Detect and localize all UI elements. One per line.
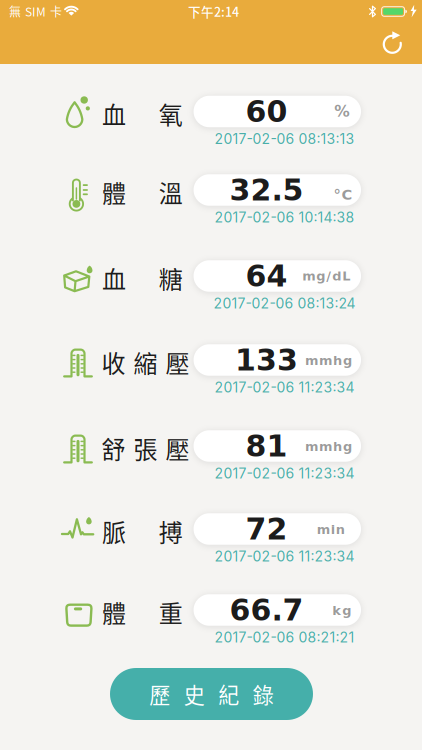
staticText: 血 (102, 96, 126, 131)
staticText: 72 (245, 511, 287, 546)
staticText: min (317, 522, 345, 537)
staticText: SIM (25, 3, 46, 20)
staticText: 2017-02-06 11:23:34 (214, 465, 354, 482)
staticText: 壓 (165, 431, 189, 465)
staticText: 133 (235, 342, 298, 377)
staticText: 體 (102, 595, 126, 629)
staticText: % (334, 102, 349, 120)
staticText: 2017-02-06 08:13:24 (213, 295, 355, 312)
staticText: 81 (245, 428, 287, 463)
staticText: 氧 (159, 96, 183, 131)
button[interactable]: Refresh (372, 24, 412, 64)
staticText: mmhg (305, 439, 352, 454)
staticText: 收 (101, 345, 125, 379)
staticText: 壓 (165, 345, 189, 379)
staticText: 體 (102, 175, 126, 209)
staticText: 搏 (159, 514, 183, 548)
staticText: 32.5 (229, 172, 303, 207)
staticText: 下午2:14 (188, 2, 239, 20)
staticText: 2017-02-06 11:23:34 (214, 379, 354, 396)
staticText: 重 (159, 595, 183, 629)
staticText: 糖 (159, 261, 183, 295)
staticText: 史 (184, 679, 205, 709)
staticText: 縮 (133, 345, 157, 379)
staticText: 血 (102, 261, 126, 295)
staticText: 66.7 (229, 592, 303, 627)
staticText: 無 (9, 3, 21, 20)
staticText: 60 (245, 94, 287, 129)
staticText: 歷 (149, 679, 170, 709)
staticText: mg/dL (302, 268, 350, 284)
staticText: 2017-02-06 11:23:34 (214, 548, 354, 565)
staticText: 脈 (102, 514, 126, 548)
staticText: 錄 (253, 679, 274, 709)
staticText: 2017-02-06 08:13:13 (214, 130, 354, 147)
staticText: 舒 (101, 431, 125, 465)
staticText: 卡 (50, 3, 62, 20)
staticText: 64 (245, 258, 287, 293)
staticText: 紀 (218, 679, 239, 709)
staticText: mmhg (305, 353, 352, 368)
staticText: °C (333, 186, 352, 203)
staticText: 張 (133, 431, 157, 465)
staticText: 2017-02-06 08:21:21 (214, 629, 354, 646)
staticText: 溫 (159, 175, 183, 209)
button[interactable]: 歷 (110, 668, 313, 720)
staticText: 2017-02-06 10:14:38 (214, 209, 354, 226)
staticText: kg (332, 603, 351, 618)
